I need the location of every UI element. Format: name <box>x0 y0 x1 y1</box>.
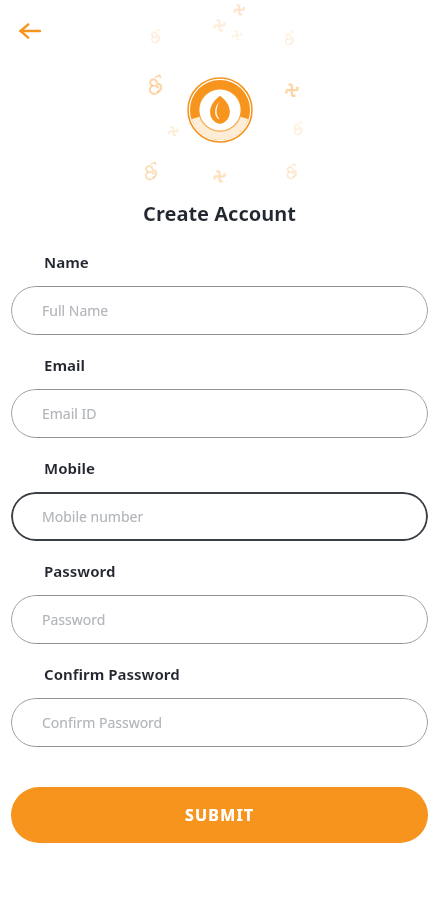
button[interactable]: Password <box>11 595 428 644</box>
staticText: Password <box>42 610 106 629</box>
button[interactable]: Mobile number <box>11 492 428 541</box>
staticText: Password <box>44 561 116 581</box>
button[interactable]: SUBMIT <box>11 787 428 843</box>
staticText: Mobile <box>44 458 95 478</box>
staticText: Confirm Password <box>44 664 180 684</box>
button[interactable]: Confirm Password <box>11 698 428 747</box>
staticText: Create Account <box>0 200 439 227</box>
button[interactable]: Email ID <box>11 389 428 438</box>
staticText: Full Name <box>42 301 109 320</box>
staticText: SUBMIT <box>185 804 255 826</box>
button[interactable]: Full Name <box>11 286 428 335</box>
staticText: Mobile number <box>42 507 144 526</box>
staticText: Email <box>44 355 85 375</box>
staticText: Confirm Password <box>42 713 163 732</box>
staticText: Email ID <box>42 404 97 423</box>
button[interactable]: Back <box>12 13 48 49</box>
staticText: Name <box>44 252 89 272</box>
